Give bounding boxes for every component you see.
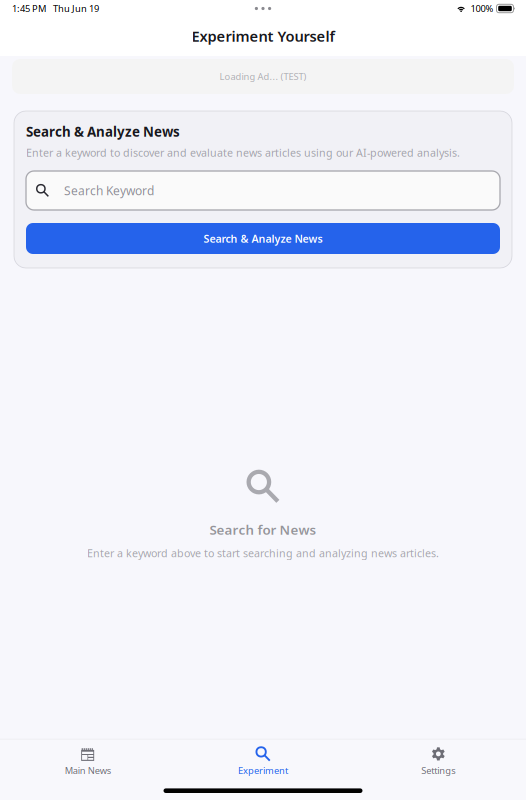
staticText: 1:45 PM (12, 2, 46, 15)
staticText: Search for News (209, 521, 316, 538)
staticText: Settings (421, 764, 455, 777)
staticText: Search & Analyze News (203, 231, 322, 246)
button[interactable]: Search & Analyze News (26, 223, 500, 254)
staticText: 100% (470, 2, 493, 15)
staticText: Enter a keyword to discover and evaluate… (26, 145, 460, 160)
staticText: Main News (65, 764, 111, 777)
button[interactable]: Settings (351, 739, 526, 774)
staticText: Loading Ad... (TEST) (219, 70, 306, 83)
staticText: Search Keyword (64, 182, 154, 198)
staticText: Enter a keyword above to start searching… (87, 546, 439, 560)
button[interactable]: Main News (0, 739, 175, 774)
staticText: Thu Jun 19 (53, 2, 99, 15)
staticText: Experiment Yourself (191, 26, 334, 46)
staticText: Search & Analyze News (26, 123, 180, 140)
button[interactable]: Search Keyword (26, 171, 500, 210)
button[interactable]: Experiment (175, 739, 351, 774)
staticText: Experiment (238, 764, 288, 777)
